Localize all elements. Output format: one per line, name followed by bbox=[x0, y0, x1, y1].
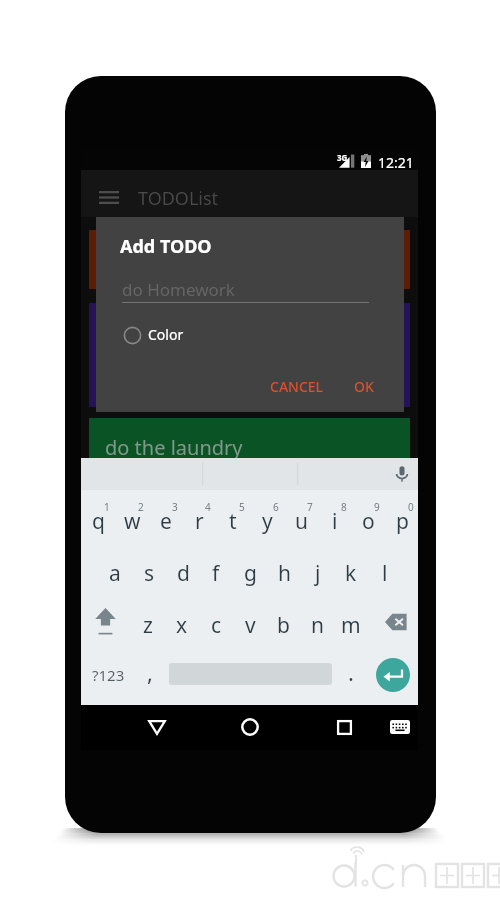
staticText: 12:21 bbox=[378, 153, 414, 172]
staticText: u bbox=[295, 507, 308, 536]
button[interactable]: c bbox=[199, 596, 233, 648]
button[interactable]: 1 bbox=[81, 492, 115, 544]
staticText: Color bbox=[148, 325, 184, 344]
staticText: l bbox=[382, 559, 388, 588]
staticText: 1 bbox=[104, 500, 110, 514]
staticText: n bbox=[311, 611, 324, 640]
button[interactable]: k bbox=[334, 544, 368, 596]
button[interactable]: 9 bbox=[351, 492, 385, 544]
staticText: 0 bbox=[408, 500, 414, 514]
button[interactable]: s bbox=[132, 544, 166, 596]
button[interactable]: h bbox=[267, 544, 301, 596]
button[interactable]: CANCEL bbox=[266, 373, 328, 399]
button[interactable]: 3 bbox=[149, 492, 183, 544]
button[interactable]: Recent apps bbox=[328, 711, 360, 743]
staticText: w bbox=[124, 507, 141, 536]
button[interactable]: Shift bbox=[84, 596, 126, 648]
staticText: c bbox=[211, 611, 222, 640]
staticText: h bbox=[278, 559, 291, 588]
staticText: t bbox=[229, 507, 237, 536]
staticText: q bbox=[92, 507, 105, 536]
button[interactable]: x bbox=[165, 596, 199, 648]
staticText: b bbox=[277, 611, 290, 640]
staticText: . bbox=[348, 657, 354, 687]
button[interactable]: . bbox=[334, 648, 368, 701]
staticText: g bbox=[244, 559, 257, 588]
staticText: 4 bbox=[205, 500, 211, 514]
button[interactable]: b bbox=[266, 596, 300, 648]
staticText: s bbox=[144, 559, 155, 588]
button[interactable] bbox=[89, 303, 410, 407]
button[interactable]: 7 bbox=[284, 492, 318, 544]
staticText: e bbox=[160, 507, 172, 536]
staticText: z bbox=[143, 611, 153, 640]
staticText: do Homework bbox=[122, 278, 235, 301]
button[interactable]: d bbox=[166, 544, 200, 596]
staticText: , bbox=[147, 657, 153, 687]
button[interactable]: Color bbox=[123, 325, 184, 345]
button[interactable] bbox=[89, 230, 410, 289]
staticText: CANCEL bbox=[270, 377, 324, 396]
staticText: do the laundry bbox=[105, 434, 243, 461]
button[interactable]: l bbox=[368, 544, 402, 596]
button[interactable]: 8 bbox=[318, 492, 352, 544]
button[interactable]: Enter bbox=[376, 658, 410, 692]
button[interactable]: m bbox=[334, 596, 368, 648]
staticText: y bbox=[262, 507, 273, 536]
button[interactable]: Home bbox=[234, 711, 266, 743]
button[interactable]: g bbox=[233, 544, 267, 596]
button[interactable]: 6 bbox=[250, 492, 284, 544]
button[interactable]: OK bbox=[344, 373, 384, 399]
staticText: k bbox=[345, 559, 357, 588]
staticText: a bbox=[109, 559, 121, 588]
staticText: TODOList bbox=[138, 186, 219, 211]
button[interactable]: , bbox=[133, 648, 167, 701]
button[interactable]: Switch keyboard bbox=[384, 711, 416, 743]
staticText: o bbox=[362, 507, 375, 536]
staticText: 8 bbox=[341, 500, 347, 514]
button[interactable]: 2 bbox=[115, 492, 149, 544]
button[interactable]: 0 bbox=[385, 492, 419, 544]
button[interactable]: 5 bbox=[216, 492, 250, 544]
staticText: m bbox=[341, 611, 361, 640]
staticText: 5 bbox=[239, 500, 245, 514]
button[interactable]: n bbox=[300, 596, 334, 648]
staticText: Add TODO bbox=[120, 234, 212, 259]
button[interactable]: a bbox=[98, 544, 132, 596]
staticText: i bbox=[332, 507, 338, 536]
staticText: x bbox=[176, 611, 188, 640]
button[interactable]: Open navigation drawer bbox=[95, 185, 122, 210]
staticText: 2 bbox=[138, 500, 144, 514]
button[interactable]: ?123 bbox=[86, 648, 130, 701]
button[interactable]: z bbox=[131, 596, 165, 648]
button[interactable]: Voice input bbox=[393, 465, 411, 483]
button[interactable]: do the laundry bbox=[89, 418, 410, 480]
button[interactable]: v bbox=[233, 596, 267, 648]
button[interactable]: f bbox=[199, 544, 233, 596]
staticText: r bbox=[195, 507, 204, 536]
staticText: ?123 bbox=[92, 665, 125, 685]
staticText: d bbox=[177, 559, 190, 588]
staticText: 7 bbox=[307, 500, 313, 514]
staticText: f bbox=[212, 559, 220, 588]
staticText: v bbox=[245, 611, 256, 640]
button[interactable]: Back bbox=[141, 711, 173, 743]
staticText: 3G bbox=[337, 152, 348, 163]
staticText: OK bbox=[354, 377, 374, 396]
staticText: j bbox=[315, 559, 321, 588]
staticText: 6 bbox=[273, 500, 279, 514]
staticText: 9 bbox=[374, 500, 380, 514]
button[interactable]: Backspace bbox=[377, 596, 415, 648]
button[interactable]: 4 bbox=[182, 492, 216, 544]
staticText: 3 bbox=[172, 500, 178, 514]
staticText: p bbox=[396, 507, 409, 536]
button[interactable]: j bbox=[301, 544, 335, 596]
